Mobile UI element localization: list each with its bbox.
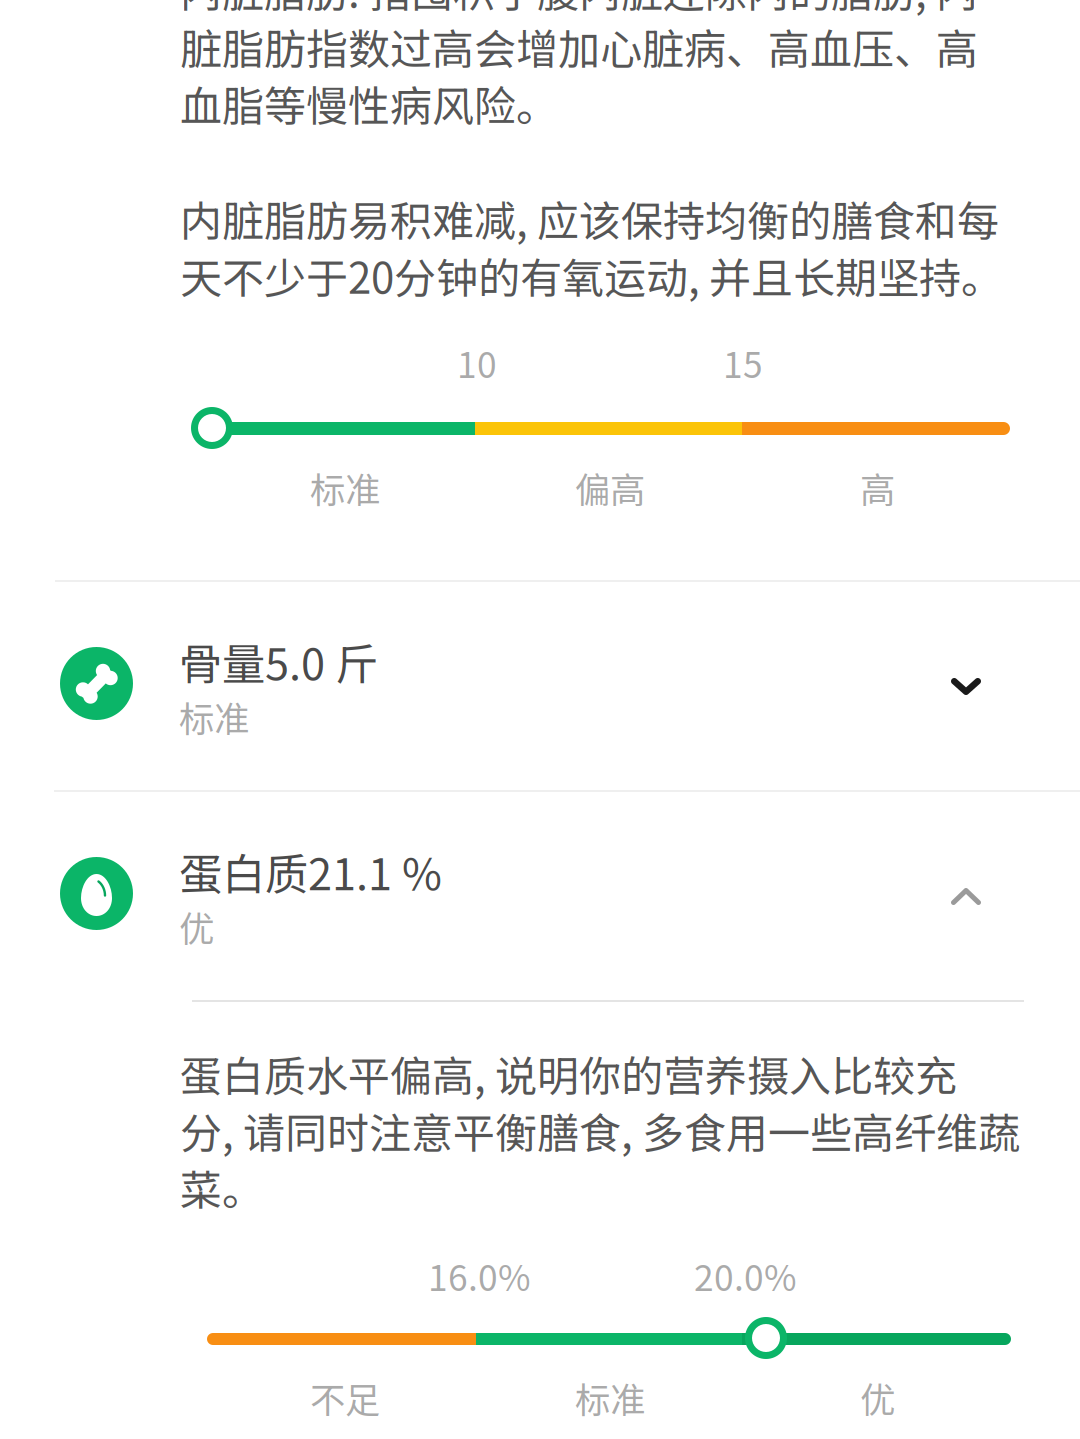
- staticText: 10: [457, 337, 497, 388]
- button[interactable]: 骨量5.0 斤: [0, 618, 1080, 758]
- staticText: 蛋白质21.1 %: [179, 840, 442, 903]
- staticText: 不足: [310, 1372, 380, 1423]
- staticText: 偏高: [575, 462, 645, 513]
- staticText: 菜。: [180, 1157, 264, 1218]
- staticText: 内脏脂肪: 指囤积于腹内脏连隙内的脂肪, 内: [180, 0, 978, 20]
- staticText: 蛋白质水平偏高, 说明你的营养摄入比较充: [180, 1043, 957, 1104]
- staticText: 分, 请同时注意平衡膳食, 多食用一些高纤维蔬: [180, 1100, 1020, 1161]
- staticText: 优: [179, 901, 214, 952]
- staticText: 标准: [179, 691, 249, 742]
- staticText: 标准: [575, 1372, 645, 1423]
- staticText: 16.0%: [428, 1250, 531, 1301]
- staticText: 脏脂肪指数过高会增加心脏病、高血压、高: [180, 16, 978, 77]
- staticText: 内脏脂肪易积难减, 应该保持均衡的膳食和每: [180, 188, 999, 249]
- staticText: 标准: [310, 462, 380, 513]
- staticText: 天不少于20分钟的有氧运动, 并且长期坚持。: [180, 245, 1003, 306]
- button[interactable]: 蛋白质21.1 %: [0, 828, 1080, 968]
- staticText: 优: [860, 1372, 895, 1423]
- staticText: 血脂等慢性病风险。: [180, 73, 558, 134]
- staticText: 骨量5.0 斤: [179, 630, 378, 693]
- staticText: 高: [860, 462, 895, 513]
- staticText: 15: [723, 337, 763, 388]
- staticText: 20.0%: [694, 1250, 797, 1301]
